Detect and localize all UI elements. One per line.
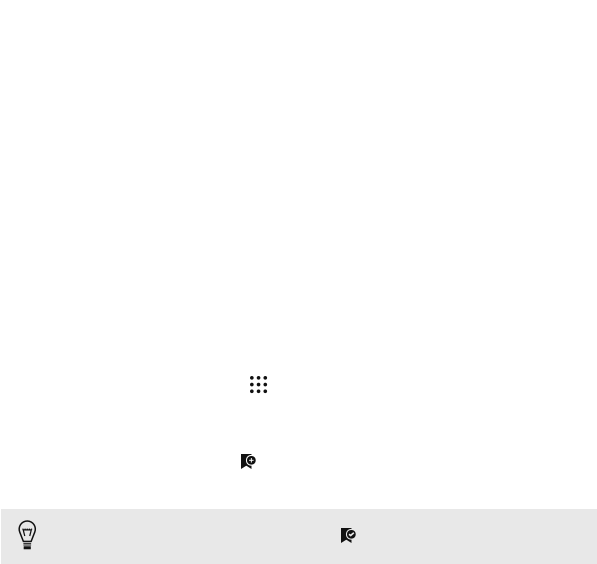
button[interactable]: Tips [9,504,45,558]
button[interactable]: Grid view [236,362,280,406]
button[interactable]: Saved [329,508,368,563]
button[interactable]: Add bookmark [227,440,270,483]
